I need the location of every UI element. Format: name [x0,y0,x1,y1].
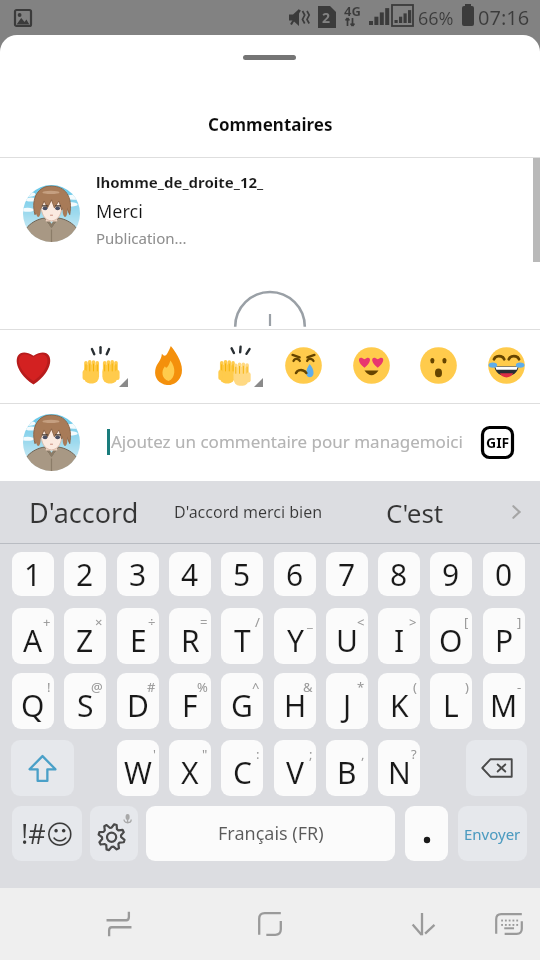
button[interactable]: Clap [209,339,261,391]
button[interactable]: D'accord [6,481,161,543]
button[interactable]: 1 [12,552,54,596]
staticText: 5 [233,554,251,595]
staticText: " [202,745,208,763]
button[interactable]: Backspace [466,740,527,796]
staticText: > [409,613,417,631]
button[interactable]: R [169,608,211,664]
button[interactable]: Y [274,608,316,664]
button[interactable]: I [378,608,420,664]
staticText: 2 [76,554,94,595]
button[interactable]: O [430,608,472,664]
button[interactable]: 9 [430,552,472,596]
button[interactable]: Q [12,673,54,729]
button[interactable]: A [12,608,54,664]
staticText: Merci [96,199,143,224]
button[interactable]: S [64,673,106,729]
staticText: 7 [338,554,356,595]
button[interactable]: Laughing [480,339,532,391]
staticText: C'est [386,495,444,530]
button[interactable]: Z [64,608,106,664]
button[interactable]: V [274,740,316,796]
button[interactable]: D'accord merci bien [172,481,324,543]
staticText: X [181,752,199,793]
button[interactable]: Send [458,806,527,861]
staticText: < [357,613,365,631]
staticText: G [231,685,253,726]
staticText: E [130,620,147,661]
staticText: K [390,685,409,726]
staticText: lhomme_de_droite_12_ [96,172,264,192]
staticText: ^ [252,678,260,696]
button[interactable]: U [326,608,368,664]
button[interactable]: Heart [7,339,59,391]
button[interactable]: M [483,673,525,729]
button[interactable]: GIF [481,426,514,459]
staticText: C [233,752,252,793]
staticText: Y [287,620,304,661]
button[interactable]: N [378,740,420,796]
button[interactable]: 0 [483,552,525,596]
staticText: = [200,613,208,631]
button[interactable]: Home [242,888,298,960]
staticText: : [256,745,260,763]
button[interactable]: D [117,673,159,729]
button[interactable]: B [326,740,368,796]
staticText: ; [309,745,313,763]
button[interactable]: 8 [378,552,420,596]
button[interactable]: Recent apps [91,888,147,960]
staticText: GIF [486,433,510,452]
button[interactable]: Period [405,806,448,861]
button[interactable]: T [221,608,263,664]
staticText: & [303,678,313,696]
staticText: ' [153,745,156,763]
staticText: 6 [286,554,304,595]
staticText: 3 [129,554,147,595]
button[interactable]: Crying [277,339,329,391]
button[interactable]: H [274,673,316,729]
staticText: Q [21,685,45,726]
staticText: F [182,685,198,726]
button[interactable]: F [169,673,211,729]
button[interactable]: Raising hands [74,339,126,391]
button[interactable]: Heart eyes [345,339,397,391]
button[interactable]: X [169,740,211,796]
button[interactable]: W [117,740,159,796]
button[interactable]: 6 [274,552,316,596]
staticText: 4G [344,2,361,20]
staticText: Français (FR) [218,821,324,846]
button[interactable]: Shift [11,740,74,796]
staticText: 2 [322,8,331,27]
button[interactable]: L [430,673,472,729]
button[interactable]: Symbols [12,806,82,861]
button[interactable]: Settings [90,806,138,861]
staticText: 0 [495,554,513,595]
button[interactable]: 3 [117,552,159,596]
button[interactable]: P [483,608,525,664]
button[interactable]: Hide keyboard [394,888,450,960]
button[interactable]: Fire [142,339,194,391]
button[interactable]: C'est [340,481,490,543]
staticText: ? [411,745,417,763]
button[interactable]: J [326,673,368,729]
staticText: # [147,678,156,696]
button[interactable]: E [117,608,159,664]
button[interactable]: 2 [64,552,106,596]
button[interactable]: Space Français (FR) [146,806,395,861]
button[interactable]: 4 [169,552,211,596]
staticText: B [337,752,357,793]
staticText: R [181,620,200,661]
staticText: + [43,613,51,631]
button[interactable]: 7 [326,552,368,596]
staticText: L [443,685,459,726]
staticText: P [495,620,514,661]
staticText: 1 [24,554,42,595]
button[interactable]: Show keyboard [481,888,537,960]
button[interactable]: 5 [221,552,263,596]
button[interactable]: G [221,673,263,729]
button[interactable]: K [378,673,420,729]
staticText: - [517,678,522,696]
button[interactable]: Surprised [412,339,464,391]
button[interactable]: More suggestions [492,481,540,543]
button[interactable]: C [221,740,263,796]
staticText: O [439,620,463,661]
